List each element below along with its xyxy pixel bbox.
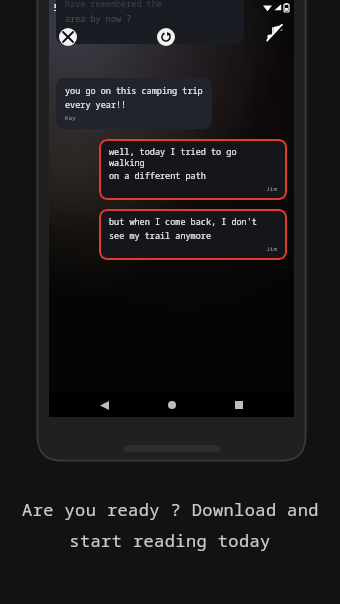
staticText: area by now ? xyxy=(65,13,132,25)
staticText: 5:46 xyxy=(54,2,70,13)
button[interactable]: you go on this camping trip xyxy=(56,78,212,129)
staticText: Jim xyxy=(109,245,277,253)
button[interactable]: Back xyxy=(92,393,116,417)
staticText: well, today I tried to go walking xyxy=(109,146,277,168)
staticText: every year!! xyxy=(65,99,127,111)
button[interactable]: have remembered the xyxy=(56,0,244,44)
button[interactable]: Refresh xyxy=(157,28,175,46)
staticText: start reading today xyxy=(69,529,271,552)
staticText: Are you ready ? Download and xyxy=(22,498,319,521)
staticText: but when I come back, I don't xyxy=(109,216,257,228)
staticText: on a different path xyxy=(109,170,206,182)
staticText: Jim xyxy=(109,185,277,193)
button[interactable]: Recents xyxy=(227,393,251,417)
staticText: have remembered the xyxy=(65,0,162,10)
staticText: you go on this camping trip xyxy=(65,85,203,97)
button[interactable]: Mute music xyxy=(264,22,286,44)
button[interactable]: Close xyxy=(59,28,77,46)
button[interactable]: but when I come back, I don't xyxy=(99,209,287,260)
staticText: Kay xyxy=(65,114,76,122)
staticText: see my trail anymore xyxy=(109,230,212,242)
button[interactable]: well, today I tried to go walking xyxy=(99,139,287,200)
button[interactable]: Home xyxy=(160,393,184,417)
staticText: Kay xyxy=(65,28,76,36)
